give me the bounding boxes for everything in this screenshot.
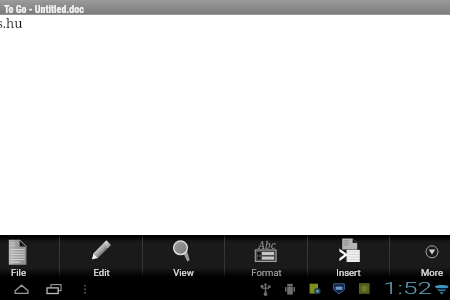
staticText: Format bbox=[251, 267, 282, 277]
staticText: File bbox=[11, 267, 26, 277]
staticText: Edit bbox=[93, 267, 110, 277]
button[interactable]: File bbox=[0, 235, 60, 277]
button[interactable]: Home bbox=[14, 282, 30, 298]
staticText: To Go - Untitled.doc bbox=[4, 4, 84, 16]
staticText: More bbox=[421, 267, 443, 277]
staticText: Insert bbox=[336, 267, 361, 277]
button[interactable]: Abc bbox=[225, 235, 308, 277]
staticText: 1:52 bbox=[383, 279, 432, 298]
button[interactable]: Menu bbox=[79, 282, 91, 298]
staticText: s.hu bbox=[0, 14, 23, 32]
button[interactable]: Insert bbox=[307, 235, 390, 277]
staticText: View bbox=[173, 267, 194, 277]
button[interactable]: More bbox=[390, 235, 450, 277]
button[interactable]: Edit bbox=[60, 235, 143, 277]
button[interactable]: Recent apps bbox=[45, 282, 63, 298]
staticText: Abc bbox=[258, 238, 276, 252]
button[interactable]: View bbox=[142, 235, 225, 277]
